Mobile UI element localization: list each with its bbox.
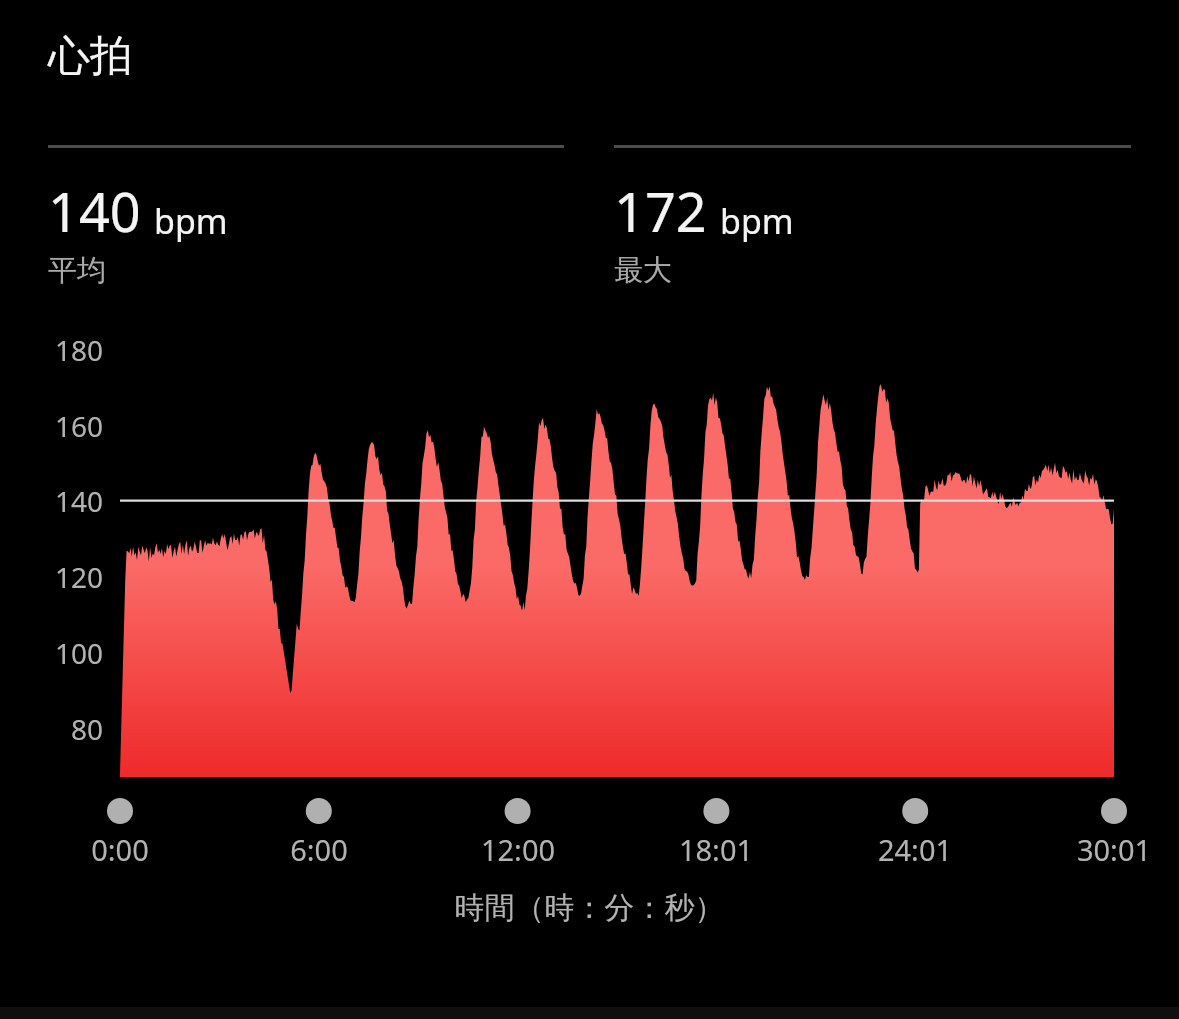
staticText: 0:00	[35, 830, 205, 869]
staticText: 140	[0, 482, 103, 520]
staticText: 30:01	[1029, 830, 1179, 869]
staticText: 140	[48, 174, 141, 248]
staticText: 180	[0, 331, 103, 369]
staticText: 6:00	[234, 830, 404, 869]
staticText: 172	[614, 174, 707, 248]
staticText: bpm	[720, 198, 794, 244]
button[interactable]: 172	[614, 145, 1131, 289]
staticText: 120	[0, 558, 103, 596]
staticText: 最大	[614, 252, 672, 289]
staticText: 平均	[48, 252, 106, 289]
staticText: 100	[0, 634, 103, 672]
staticText: 12:00	[433, 830, 603, 869]
staticText: 80	[0, 710, 103, 748]
staticText: bpm	[154, 198, 228, 244]
button[interactable]: 140	[48, 145, 564, 289]
staticText: 心拍	[48, 30, 132, 83]
staticText: 160	[0, 407, 103, 445]
staticText: 時間（時：分：秒）	[0, 889, 1179, 927]
staticText: 18:01	[631, 830, 801, 869]
staticText: 24:01	[830, 830, 1000, 869]
